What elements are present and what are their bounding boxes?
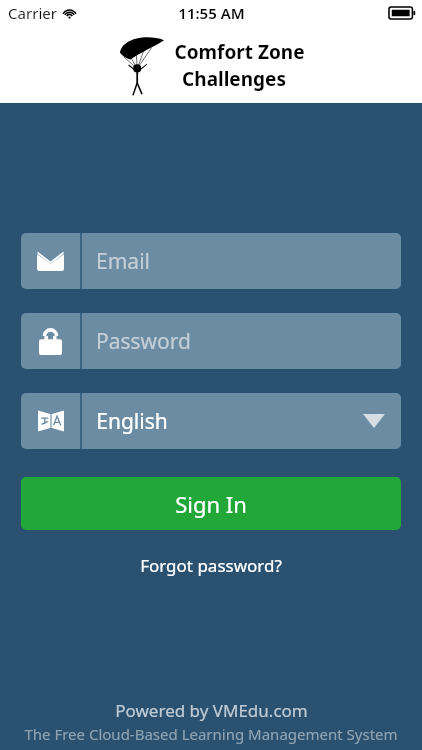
staticText: Powered by VMEdu.com	[115, 699, 308, 722]
staticText: Email	[96, 247, 150, 276]
button[interactable]: English	[21, 393, 401, 449]
button[interactable]: Sign In	[21, 477, 401, 530]
staticText: The Free Cloud-Based Learning Management…	[24, 724, 398, 744]
staticText: Carrier	[8, 3, 57, 23]
button[interactable]: Forgot password?	[130, 548, 292, 583]
button[interactable]: Email	[21, 233, 401, 289]
button[interactable]: Password	[21, 313, 401, 369]
staticText: Password	[96, 327, 191, 356]
staticText: Sign In	[175, 489, 247, 519]
staticText: English	[96, 407, 168, 436]
staticText: Challenges	[182, 66, 286, 92]
staticText: 11:55 AM	[178, 3, 245, 23]
staticText: Forgot password?	[140, 554, 282, 577]
staticText: Comfort Zone	[174, 39, 305, 65]
